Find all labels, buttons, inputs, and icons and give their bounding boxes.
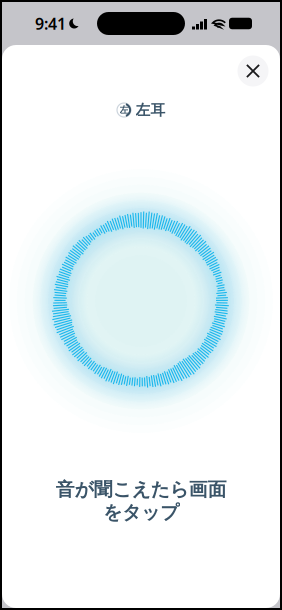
staticText: 左 [119,104,128,116]
staticText: 9:41 [35,13,66,34]
staticText: 音が聞こえたら画面 をタップ [55,478,226,524]
button[interactable]: 閉じる [235,53,271,89]
staticText: 左耳 [135,101,165,119]
